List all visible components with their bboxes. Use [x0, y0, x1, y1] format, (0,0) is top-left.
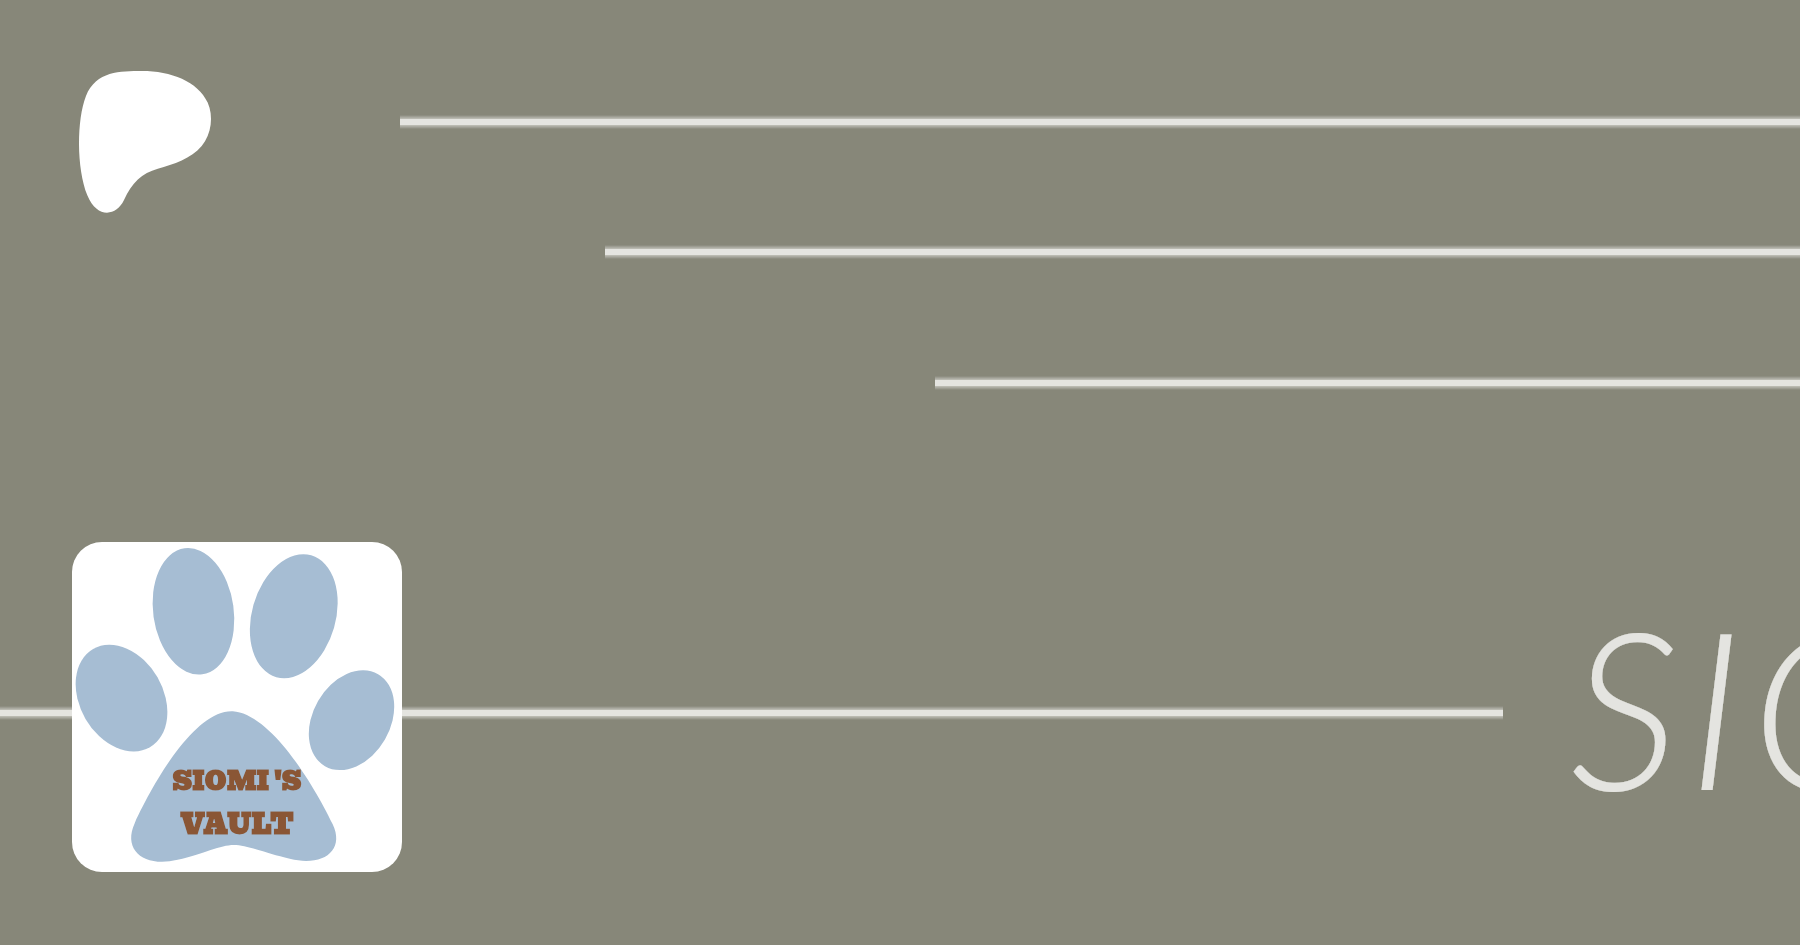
staticText: SIOMI: [1570, 574, 1800, 837]
staticText: SIOMI 'S: [172, 760, 302, 802]
button[interactable]: Siomi's Vault logo: [72, 542, 402, 872]
button[interactable]: Patreon: [78, 71, 211, 218]
staticText: VAULT: [180, 802, 294, 847]
